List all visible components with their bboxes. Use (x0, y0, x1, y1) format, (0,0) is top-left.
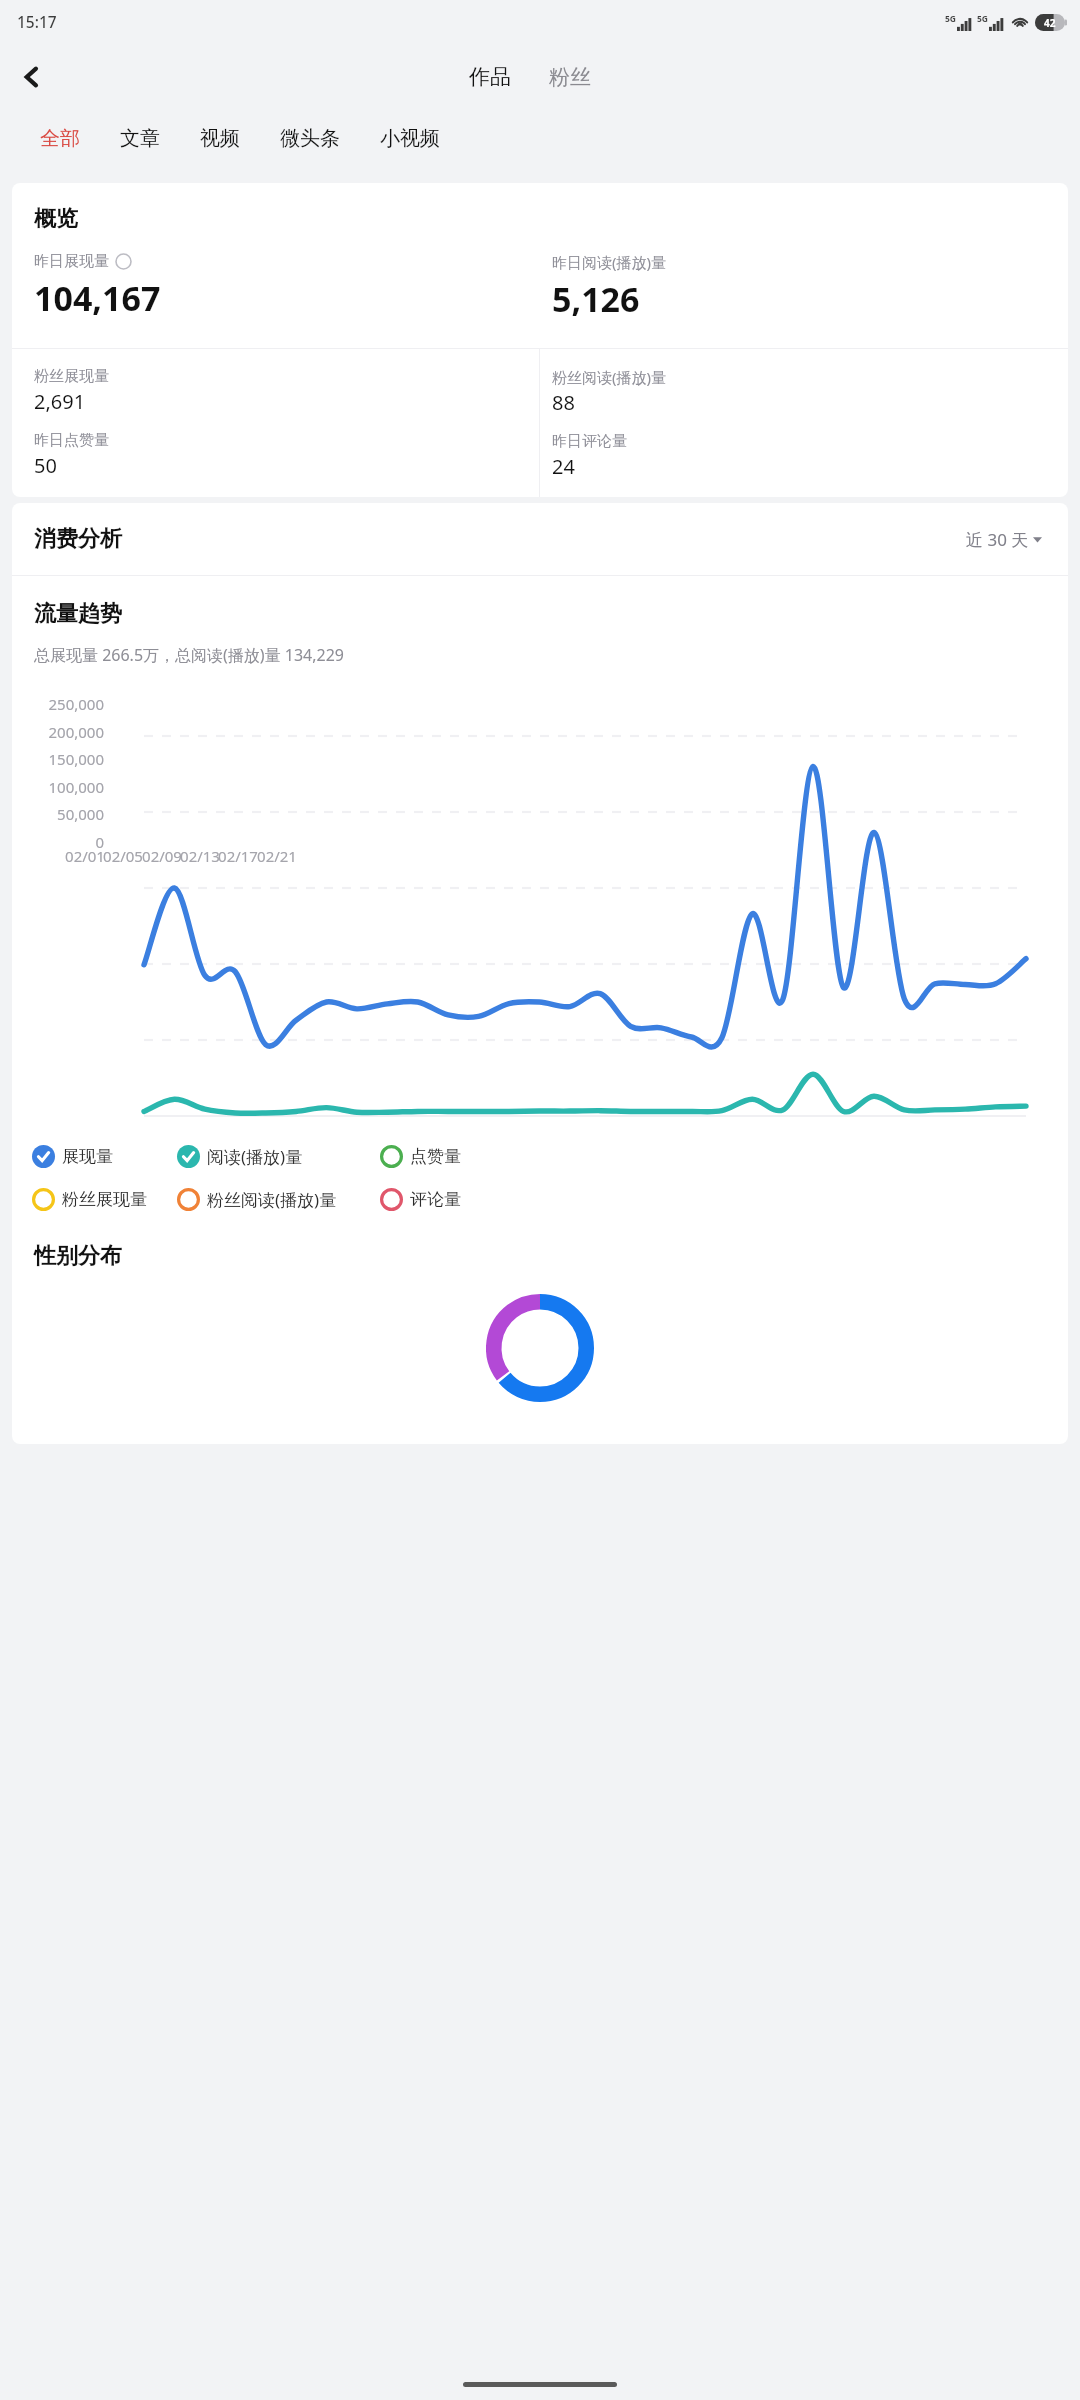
button[interactable]: Back (8, 53, 56, 101)
staticText: 50 (34, 452, 57, 479)
staticText: 150,000 (12, 749, 104, 769)
staticText: 02/13 (175, 846, 225, 866)
staticText: 02/21 (252, 846, 302, 866)
staticText: 104,167 (34, 275, 161, 321)
staticText: 15:17 (17, 11, 57, 32)
staticText: 概览 (34, 205, 78, 233)
staticText: 粉丝阅读(播放)量 (207, 1188, 337, 1211)
staticText: 昨日点赞量 (34, 431, 109, 450)
staticText: 100,000 (12, 777, 104, 797)
staticText: 5,126 (552, 276, 640, 322)
button[interactable]: 视频 (186, 120, 254, 157)
staticText: 展现量 (62, 1146, 113, 1167)
staticText: 2,691 (34, 388, 86, 415)
staticText: 42 (1044, 16, 1056, 30)
button[interactable]: 作品 (463, 60, 517, 94)
staticText: 评论量 (410, 1189, 461, 1210)
staticText: 昨日评论量 (552, 432, 627, 451)
staticText: 粉丝阅读(播放)量 (552, 367, 667, 387)
button[interactable]: 展现量 (32, 1142, 177, 1171)
button[interactable]: 评论量 (380, 1185, 461, 1214)
staticText: 作品 (469, 64, 511, 90)
button[interactable]: 粉丝展现量 (32, 1185, 177, 1214)
staticText: 文章 (120, 126, 160, 151)
staticText: 02/05 (98, 846, 148, 866)
staticText: 消费分析 (34, 525, 122, 553)
button[interactable]: 微头条 (266, 120, 354, 157)
staticText: 粉丝展现量 (62, 1189, 147, 1210)
staticText: 250,000 (12, 694, 104, 714)
staticText: 02/09 (137, 846, 187, 866)
button[interactable]: 全部 (26, 120, 94, 157)
staticText: 全部 (40, 126, 80, 151)
staticText: 粉丝展现量 (34, 367, 109, 386)
staticText: 50,000 (12, 804, 104, 824)
staticText: 粉丝 (549, 64, 591, 90)
staticText: 5G (977, 13, 989, 25)
staticText: 昨日展现量 (34, 252, 109, 271)
staticText: 0 (12, 832, 104, 852)
button[interactable]: 粉丝 (543, 60, 597, 94)
button[interactable]: 粉丝阅读(播放)量 (177, 1185, 380, 1214)
staticText: 近 30 天 (966, 528, 1029, 551)
staticText: 昨日阅读(播放)量 (552, 252, 667, 272)
staticText: 阅读(播放)量 (207, 1145, 303, 1168)
staticText: 性别分布 (34, 1242, 122, 1270)
button[interactable]: 小视频 (366, 120, 454, 157)
button[interactable]: 点赞量 (380, 1142, 461, 1171)
staticText: 点赞量 (410, 1146, 461, 1167)
staticText: 微头条 (280, 126, 340, 151)
staticText: 02/01 (60, 846, 110, 866)
button[interactable]: 近 30 天 (962, 524, 1046, 555)
button[interactable]: 阅读(播放)量 (177, 1142, 380, 1171)
staticText: 24 (552, 453, 575, 480)
staticText: 5G (945, 13, 957, 25)
staticText: 小视频 (380, 126, 440, 151)
staticText: 200,000 (12, 722, 104, 742)
button[interactable]: 文章 (106, 120, 174, 157)
staticText: 视频 (200, 126, 240, 151)
staticText: 88 (552, 389, 575, 416)
staticText: 总展现量 266.5万，总阅读(播放)量 134,229 (34, 644, 345, 666)
staticText: 02/17 (213, 846, 263, 866)
staticText: 流量趋势 (34, 600, 122, 628)
